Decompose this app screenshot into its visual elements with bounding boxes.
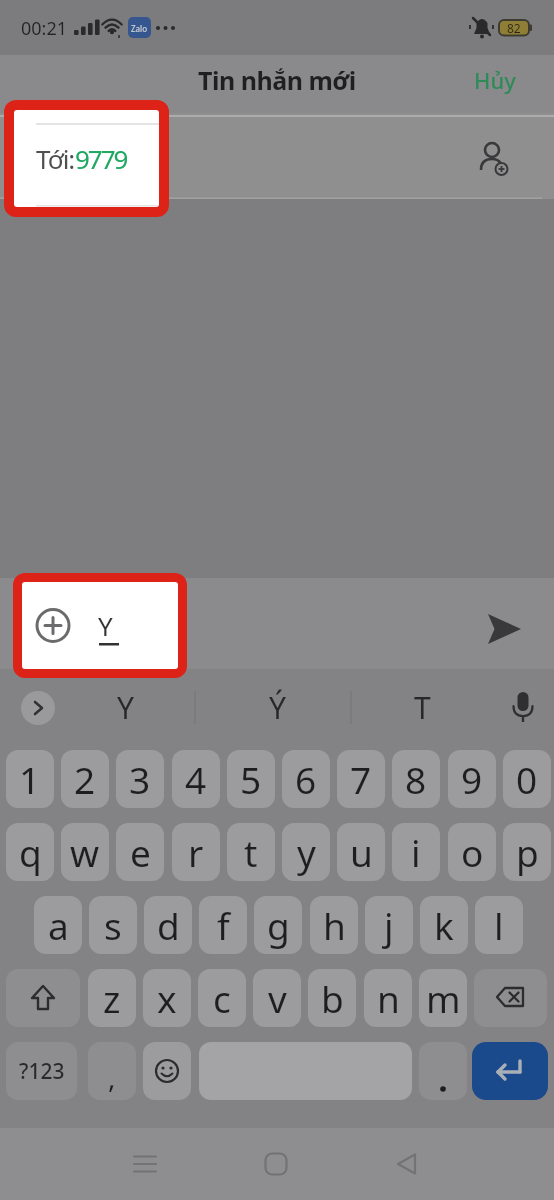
staticText: 8 — [405, 754, 427, 804]
staticText: k — [434, 900, 454, 950]
button[interactable]: v — [253, 969, 301, 1027]
button[interactable]: T — [387, 681, 457, 733]
button[interactable]: k — [420, 896, 468, 954]
button[interactable]: a — [34, 896, 82, 954]
button[interactable]: h — [310, 896, 358, 954]
button[interactable]: Y — [90, 681, 160, 733]
button[interactable] — [6, 969, 80, 1027]
button[interactable]: b — [308, 969, 356, 1027]
button[interactable]: Tới: — [4, 100, 169, 217]
button[interactable]: 8 — [392, 750, 440, 808]
staticText: Y — [117, 687, 134, 728]
staticText: Hủy — [474, 65, 516, 95]
button[interactable]: 9 — [448, 750, 496, 808]
staticText: y — [297, 827, 316, 877]
button[interactable]: l — [475, 896, 523, 954]
button[interactable]: 2 — [61, 750, 109, 808]
staticText: 3 — [129, 754, 151, 804]
staticText: 0 — [516, 754, 538, 804]
button[interactable]: d — [144, 896, 192, 954]
button[interactable] — [0, 113, 554, 199]
button[interactable]: i — [392, 823, 440, 881]
button[interactable]: z — [88, 969, 136, 1027]
button[interactable]: m — [419, 969, 467, 1027]
staticText: s — [104, 900, 122, 950]
button[interactable]: e — [116, 823, 164, 881]
button[interactable]: q — [6, 823, 54, 881]
staticText: 9 — [461, 754, 483, 804]
button[interactable]: 5 — [227, 750, 275, 808]
button[interactable]: 4 — [172, 750, 220, 808]
staticText: z — [103, 973, 121, 1023]
button[interactable]: f — [199, 896, 247, 954]
staticText: n — [377, 973, 400, 1023]
staticText: r — [188, 827, 204, 877]
staticText: ?123 — [19, 1057, 65, 1086]
button[interactable]: Hủy — [474, 55, 516, 113]
button[interactable] — [379, 1134, 435, 1194]
staticText: e — [130, 827, 151, 877]
button[interactable] — [199, 1042, 412, 1100]
button[interactable] — [21, 691, 55, 725]
staticText: 4 — [185, 754, 207, 804]
staticText: 6 — [295, 754, 317, 804]
button[interactable]: w — [61, 823, 109, 881]
button[interactable]: 3 — [116, 750, 164, 808]
staticText: h — [323, 900, 346, 950]
button[interactable]: r — [172, 823, 220, 881]
button[interactable]: , — [88, 1042, 136, 1100]
button[interactable] — [477, 603, 531, 655]
button[interactable]: s — [89, 896, 137, 954]
staticText: d — [157, 900, 180, 950]
staticText: u — [350, 827, 373, 877]
staticText: i — [411, 827, 421, 877]
button[interactable]: y — [282, 823, 330, 881]
button[interactable] — [474, 969, 547, 1027]
staticText: m — [426, 973, 461, 1023]
staticText: 1 — [19, 754, 41, 804]
button[interactable]: g — [254, 896, 302, 954]
button[interactable]: 7 — [337, 750, 385, 808]
button[interactable]: u — [337, 823, 385, 881]
button[interactable]: j — [365, 896, 413, 954]
staticText: j — [384, 900, 394, 950]
staticText: 2 — [74, 754, 96, 804]
staticText: f — [217, 900, 230, 950]
staticText: , — [108, 1058, 116, 1096]
button[interactable] — [117, 1134, 173, 1194]
button[interactable]: 6 — [282, 750, 330, 808]
button[interactable]: 1 — [6, 750, 54, 808]
staticText: q — [19, 827, 42, 877]
staticText: Zalo — [131, 23, 147, 34]
staticText: Tới: — [36, 141, 75, 176]
button[interactable]: 0 — [503, 750, 551, 808]
button[interactable]: o — [448, 823, 496, 881]
staticText: g — [267, 900, 290, 950]
button[interactable]: c — [198, 969, 246, 1027]
staticText: 5 — [240, 754, 262, 804]
staticText: Y — [98, 608, 113, 643]
staticText: p — [516, 827, 539, 877]
staticText: o — [461, 827, 484, 877]
button[interactable]: n — [364, 969, 412, 1027]
button[interactable] — [248, 1134, 304, 1194]
staticText: Tin nhắn mới — [198, 63, 356, 97]
button[interactable]: ?123 — [6, 1042, 77, 1100]
staticText: Ý — [269, 687, 286, 728]
staticText: t — [244, 827, 258, 877]
staticText: l — [494, 900, 504, 950]
button[interactable]: p — [503, 823, 551, 881]
staticText: x — [157, 973, 177, 1023]
button[interactable] — [143, 1042, 191, 1100]
button[interactable]: x — [143, 969, 191, 1027]
button[interactable]: t — [227, 823, 275, 881]
button[interactable] — [419, 1042, 467, 1100]
button[interactable]: Ý — [242, 681, 312, 733]
staticText: 82 — [507, 20, 521, 36]
staticText: T — [414, 687, 431, 728]
staticText: v — [268, 973, 287, 1023]
staticText: c — [213, 973, 231, 1023]
button[interactable] — [472, 1042, 548, 1100]
button[interactable]: Y — [13, 573, 187, 678]
staticText: 00:21 — [21, 16, 68, 41]
